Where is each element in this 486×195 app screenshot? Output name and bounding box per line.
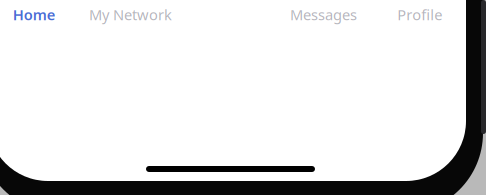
staticText: Messages	[290, 5, 357, 24]
button[interactable]: Messages	[275, 4, 372, 24]
staticText: My Network	[89, 5, 172, 24]
staticText: Profile	[397, 5, 442, 24]
button[interactable]: Home	[0, 4, 82, 24]
button[interactable]: My Network	[82, 4, 179, 24]
button[interactable]: Profile	[372, 4, 468, 24]
staticText: Home	[13, 5, 56, 24]
